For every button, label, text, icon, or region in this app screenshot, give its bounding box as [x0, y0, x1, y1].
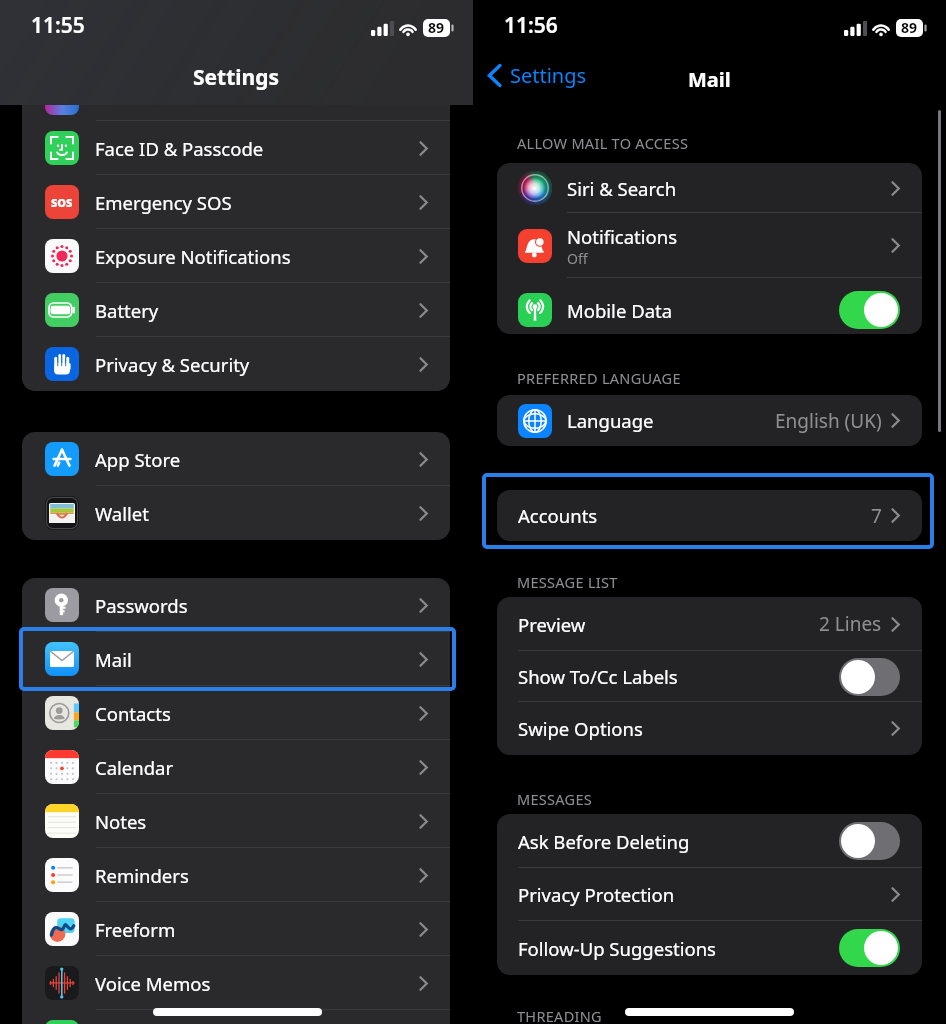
button[interactable]: Voice Memos [22, 956, 450, 1010]
staticText: PREFERRED LANGUAGE [517, 368, 681, 388]
button[interactable]: Ask Before Deleting [497, 814, 922, 868]
staticText: App Store [95, 447, 181, 472]
button[interactable]: SOS [22, 175, 450, 229]
staticText: Privacy Protection [518, 882, 675, 907]
button[interactable]: Siri & Search [497, 163, 922, 213]
button[interactable]: Exposure Notifications [22, 229, 450, 283]
button[interactable]: Preview [497, 597, 922, 651]
button[interactable]: Follow-Up Suggestions [497, 921, 922, 975]
button[interactable]: Off [839, 822, 900, 860]
staticText: Accounts [518, 503, 598, 528]
staticText: Privacy & Security [95, 352, 250, 377]
button[interactable]: Contacts [22, 686, 450, 740]
staticText: Preview [518, 612, 586, 637]
staticText: Mobile Data [567, 298, 673, 323]
staticText: SOS [51, 195, 73, 210]
button[interactable]: Settings [473, 58, 595, 93]
button[interactable]: Off [839, 658, 900, 696]
button[interactable]: Battery [22, 283, 450, 337]
staticText: Face ID & Passcode [95, 136, 264, 161]
button[interactable]: Mail [22, 632, 450, 686]
staticText: MESSAGES [517, 789, 593, 809]
button[interactable]: App Store [22, 432, 450, 486]
button[interactable]: On [839, 291, 900, 329]
staticText: 89 [901, 18, 918, 37]
staticText: Emergency SOS [95, 190, 232, 215]
button[interactable]: Accounts [497, 490, 922, 541]
staticText: English (UK) [775, 408, 882, 434]
staticText: Reminders [95, 863, 189, 888]
button[interactable]: Freeform [22, 902, 450, 956]
staticText: Notifications [567, 224, 678, 249]
staticText: Settings [510, 62, 587, 89]
staticText: Settings [193, 63, 280, 92]
staticText: Freeform [95, 917, 176, 942]
staticText: Ask Before Deleting [518, 829, 690, 854]
staticText: Contacts [95, 701, 171, 726]
button[interactable]: Notes [22, 794, 450, 848]
staticText: Siri & Search [567, 176, 677, 201]
button[interactable]: Wallet [22, 486, 450, 540]
staticText: Voice Memos [95, 971, 211, 996]
button[interactable]: Privacy & Security [22, 337, 450, 391]
staticText: 89 [428, 18, 445, 37]
button[interactable]: Swipe Options [497, 702, 922, 755]
staticText: Battery [95, 298, 159, 323]
button[interactable]: Mobile Data [497, 278, 922, 334]
staticText: Show To/Cc Labels [518, 664, 678, 689]
staticText: Notes [95, 809, 147, 834]
staticText: MESSAGE LIST [517, 572, 618, 592]
button[interactable]: Phone [22, 1010, 450, 1024]
button[interactable]: Notifications [497, 213, 922, 278]
staticText: 11:55 [31, 11, 85, 40]
button[interactable]: Reminders [22, 848, 450, 902]
button[interactable]: Face ID & Passcode [22, 121, 450, 175]
staticText: Mail [95, 647, 132, 672]
button[interactable]: On [839, 929, 900, 967]
staticText: Wallet [95, 501, 149, 526]
staticText: Calendar [95, 755, 174, 780]
button[interactable]: Language [497, 395, 922, 446]
staticText: Language [567, 408, 654, 433]
staticText: 11:56 [504, 11, 558, 40]
staticText: THREADING [517, 1006, 602, 1024]
button[interactable]: Calendar [22, 740, 450, 794]
staticText: Follow-Up Suggestions [518, 936, 716, 961]
staticText: Swipe Options [518, 716, 643, 741]
staticText: Mail [688, 66, 731, 93]
staticText: Exposure Notifications [95, 244, 291, 269]
staticText: Passwords [95, 593, 188, 618]
staticText: 2 Lines [819, 611, 882, 637]
staticText: Off [567, 249, 588, 268]
staticText: 7 [871, 503, 882, 529]
button[interactable]: Show To/Cc Labels [497, 651, 922, 702]
button[interactable]: Passwords [22, 578, 450, 632]
button[interactable]: Privacy Protection [497, 868, 922, 921]
staticText: ALLOW MAIL TO ACCESS [517, 133, 689, 153]
